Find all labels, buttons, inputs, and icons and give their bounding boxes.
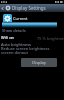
staticText: Auto brightness [1, 42, 32, 47]
staticText: screen dimout [1, 50, 59, 55]
button[interactable]: Navigate up [0, 4, 11, 12]
button[interactable]: Display [21, 58, 57, 67]
staticText: Display Settings [12, 5, 46, 11]
button[interactable]: Brightness [3, 14, 12, 23]
button[interactable]: Brightness slider [2, 22, 57, 28]
staticText: Display [32, 60, 46, 65]
staticText: Current [13, 16, 28, 21]
staticText: Wifi on [1, 35, 15, 40]
staticText: Show details [2, 28, 26, 33]
staticText: Reduce screen brightness beyond [1, 46, 59, 51]
staticText: 75 % brightness [37, 36, 64, 41]
